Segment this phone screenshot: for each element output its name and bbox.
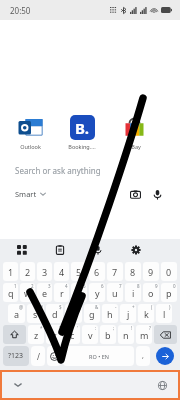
button[interactable]: a bbox=[8, 304, 25, 323]
button[interactable]: f bbox=[65, 304, 82, 323]
button[interactable]: w bbox=[20, 283, 35, 302]
button[interactable]: Backspace bbox=[154, 325, 177, 344]
button[interactable]: Voice search bbox=[149, 186, 165, 202]
staticText: Outlook bbox=[20, 143, 41, 150]
button[interactable]: 3 bbox=[37, 262, 52, 281]
staticText: o bbox=[148, 287, 154, 299]
staticText: h bbox=[107, 308, 113, 320]
button[interactable]: u bbox=[107, 283, 123, 302]
staticText: v bbox=[88, 329, 93, 341]
staticText: @ bbox=[19, 304, 24, 310]
button[interactable]: Settings bbox=[128, 242, 144, 258]
staticText: u bbox=[112, 287, 118, 299]
button[interactable]: d bbox=[46, 304, 63, 323]
button[interactable]: k bbox=[138, 304, 154, 323]
staticText: j bbox=[127, 308, 130, 320]
staticText: : bbox=[95, 325, 97, 331]
button[interactable]: 5 bbox=[71, 262, 87, 281]
button[interactable]: x bbox=[46, 325, 62, 344]
staticText: g bbox=[89, 308, 95, 320]
staticText: + bbox=[132, 304, 135, 310]
button[interactable]: m bbox=[136, 325, 152, 344]
staticText: w bbox=[24, 287, 32, 299]
staticText: ; bbox=[113, 325, 115, 331]
button[interactable]: s bbox=[27, 304, 44, 323]
button[interactable]: 4 bbox=[54, 262, 69, 281]
button[interactable]: 1 bbox=[3, 262, 18, 281]
staticText: x bbox=[52, 329, 57, 341]
button[interactable]: 9 bbox=[143, 262, 159, 281]
button[interactable]: RO • EN bbox=[63, 346, 134, 366]
button[interactable]: j bbox=[120, 304, 136, 323]
button[interactable]: 6 bbox=[89, 262, 105, 281]
staticText: p bbox=[166, 287, 172, 299]
staticText: 3 bbox=[48, 283, 51, 289]
button[interactable]: Search with camera bbox=[127, 186, 143, 202]
button[interactable]: r bbox=[54, 283, 69, 302]
button[interactable]: c bbox=[64, 325, 80, 344]
staticText: 6 bbox=[101, 283, 104, 289]
button[interactable]: Outlook bbox=[8, 114, 52, 150]
button[interactable]: 8 bbox=[125, 262, 141, 281]
button[interactable]: y bbox=[89, 283, 105, 302]
staticText: B. bbox=[75, 118, 90, 138]
button[interactable]: Emoji bbox=[47, 346, 61, 366]
button[interactable]: i bbox=[125, 283, 141, 302]
staticText: ?123 bbox=[8, 351, 24, 361]
staticText: $ bbox=[59, 304, 62, 310]
button[interactable]: / bbox=[31, 346, 45, 366]
button[interactable]: v bbox=[82, 325, 98, 344]
staticText: 6 bbox=[94, 266, 100, 278]
button[interactable]: 0 bbox=[161, 262, 177, 281]
button[interactable]: 7 bbox=[107, 262, 123, 281]
button[interactable]: p bbox=[161, 283, 177, 302]
staticText: 5 bbox=[83, 283, 86, 289]
button[interactable]: Send bbox=[152, 346, 177, 366]
button[interactable]: Apps bbox=[14, 242, 30, 258]
button[interactable]: Voice input bbox=[90, 242, 106, 258]
staticText: a bbox=[14, 308, 20, 320]
button[interactable]: n bbox=[118, 325, 134, 344]
staticText: 3 bbox=[42, 266, 48, 278]
button[interactable]: , bbox=[136, 346, 150, 366]
button[interactable]: b bbox=[100, 325, 116, 344]
button[interactable]: ?123 bbox=[3, 346, 29, 366]
staticText: , bbox=[142, 351, 144, 361]
button[interactable]: o bbox=[143, 283, 159, 302]
button[interactable]: B. bbox=[60, 114, 104, 150]
staticText: d bbox=[52, 308, 58, 320]
staticText: 0 bbox=[166, 266, 172, 278]
staticText: ? bbox=[149, 325, 151, 331]
button[interactable]: t bbox=[71, 283, 87, 302]
staticText: 2 bbox=[25, 266, 31, 278]
staticText: 1 bbox=[8, 266, 14, 278]
staticText: y bbox=[95, 287, 100, 299]
button[interactable]: e bbox=[37, 283, 52, 302]
button[interactable]: Language bbox=[157, 380, 168, 391]
staticText: 9 bbox=[148, 266, 154, 278]
staticText: s bbox=[33, 308, 38, 320]
staticText: 1 bbox=[14, 283, 17, 289]
button[interactable]: Search or ask anything bbox=[6, 158, 174, 209]
button[interactable]: Shift bbox=[3, 325, 26, 344]
button[interactable]: 2 bbox=[20, 262, 35, 281]
button[interactable]: l bbox=[156, 304, 172, 323]
button[interactable]: h bbox=[102, 304, 118, 323]
button[interactable]: Language bbox=[0, 370, 180, 400]
staticText: 9 bbox=[155, 283, 158, 289]
staticText: n bbox=[123, 329, 129, 341]
button[interactable]: q bbox=[3, 283, 18, 302]
staticText: 8 bbox=[130, 266, 136, 278]
button[interactable]: Clipboard bbox=[52, 242, 68, 258]
staticText: 8 bbox=[137, 283, 140, 289]
button[interactable]: g bbox=[84, 304, 100, 323]
button[interactable]: z bbox=[28, 325, 44, 344]
staticText: / bbox=[37, 351, 40, 362]
button[interactable]: Smart bbox=[15, 189, 46, 199]
staticText: _ bbox=[79, 304, 81, 310]
staticText: k bbox=[144, 308, 149, 320]
staticText: RO • EN bbox=[89, 353, 109, 360]
button[interactable]: eBay bbox=[112, 114, 156, 150]
